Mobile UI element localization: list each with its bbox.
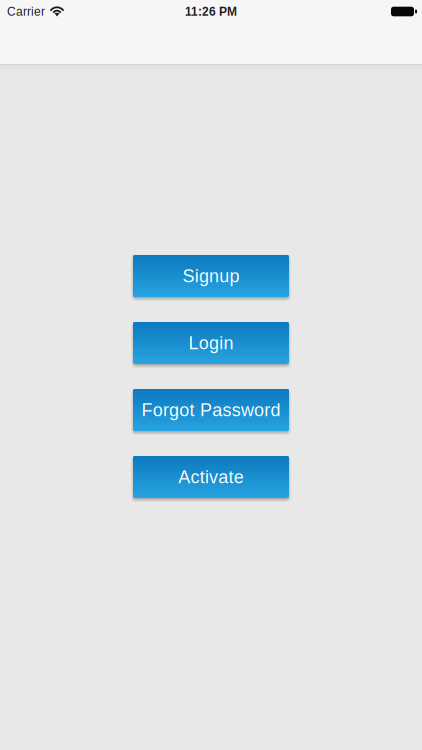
staticText: Signup (182, 266, 240, 286)
button[interactable]: Signup (133, 255, 289, 297)
staticText: 11:26 PM (185, 5, 237, 18)
button[interactable]: Forgot Password (133, 389, 289, 431)
staticText: Forgot Password (141, 400, 281, 420)
staticText: Login (189, 333, 233, 353)
staticText: Carrier (7, 5, 45, 18)
button[interactable]: Activate (133, 456, 289, 498)
staticText: Activate (178, 467, 244, 487)
button[interactable]: Login (133, 322, 289, 364)
